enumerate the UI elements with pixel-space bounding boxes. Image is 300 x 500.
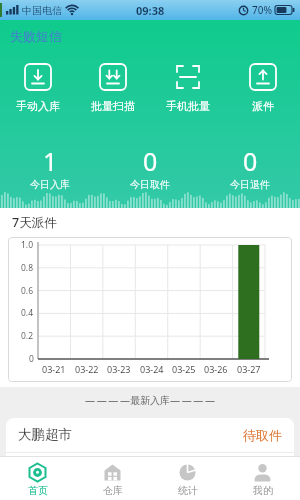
- staticText: 03-22: [75, 363, 99, 375]
- staticText: 待取件: [243, 427, 282, 443]
- button[interactable]: 0: [200, 144, 300, 191]
- staticText: 03-23: [107, 363, 131, 375]
- staticText: 0.6: [21, 285, 34, 297]
- button[interactable]: 1: [0, 144, 100, 191]
- button[interactable]: 大鹏超市: [6, 418, 294, 456]
- button[interactable]: 批量扫描: [75, 62, 150, 113]
- staticText: 手动入库: [16, 99, 60, 113]
- button[interactable]: 我的: [225, 457, 300, 500]
- staticText: 03-21: [42, 363, 66, 375]
- staticText: 1: [43, 144, 58, 178]
- staticText: 中国电信: [22, 4, 62, 17]
- staticText: 0: [29, 353, 34, 365]
- button[interactable]: 0: [100, 144, 200, 191]
- staticText: 0.8: [21, 262, 34, 274]
- button[interactable]: 首页: [0, 457, 75, 500]
- staticText: 0.4: [21, 307, 34, 319]
- staticText: 批量扫描: [91, 99, 135, 113]
- staticText: 派件: [252, 99, 274, 113]
- staticText: 统计: [178, 484, 198, 497]
- staticText: 0: [243, 144, 258, 178]
- staticText: 03-25: [172, 363, 196, 375]
- staticText: 03-26: [204, 363, 228, 375]
- button[interactable]: 手机批量: [150, 62, 225, 113]
- staticText: 大鹏超市: [18, 426, 72, 443]
- staticText: 今日入库: [30, 178, 70, 191]
- staticText: 03-27: [237, 363, 261, 375]
- staticText: — — — —最新入库— — — —: [85, 393, 215, 407]
- button[interactable]: 仓库: [75, 457, 150, 500]
- staticText: 今日退件: [230, 178, 270, 191]
- button[interactable]: 统计: [150, 457, 225, 500]
- staticText: 7天派件: [12, 214, 57, 231]
- staticText: 09:38: [136, 3, 165, 18]
- staticText: 今日取件: [130, 178, 170, 191]
- staticText: 0.2: [21, 330, 34, 342]
- staticText: 手机批量: [166, 99, 210, 113]
- staticText: 70%: [252, 3, 272, 17]
- staticText: 0: [143, 144, 158, 178]
- button[interactable]: 手动入库: [0, 62, 75, 113]
- staticText: 03-24: [140, 363, 164, 375]
- staticText: 首页: [28, 484, 48, 497]
- button[interactable]: 失败短信: [10, 28, 62, 44]
- staticText: 1.0: [21, 239, 34, 251]
- staticText: 我的: [253, 484, 273, 497]
- staticText: 仓库: [103, 484, 123, 497]
- button[interactable]: 派件: [225, 62, 300, 113]
